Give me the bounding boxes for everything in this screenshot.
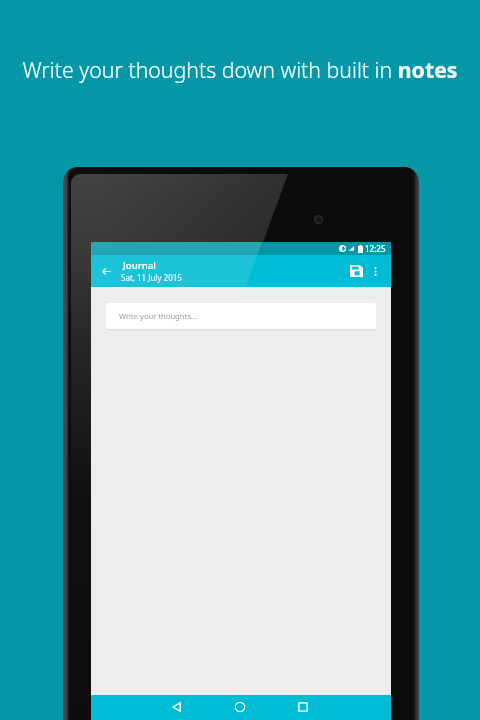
- staticText: Sat, 11 July 2015: [121, 272, 182, 283]
- button[interactable]: Recent apps: [292, 696, 314, 718]
- button[interactable]: Home: [229, 696, 251, 718]
- button[interactable]: Save: [347, 262, 365, 280]
- staticText: Journal: [123, 259, 156, 272]
- button[interactable]: Write your thoughts...: [106, 303, 376, 329]
- staticText: Write your thoughts...: [119, 311, 197, 321]
- button[interactable]: Back: [166, 696, 188, 718]
- staticText: Write your thoughts down with built in n…: [22, 55, 458, 84]
- button[interactable]: More options: [367, 263, 383, 279]
- button[interactable]: Back: [98, 263, 114, 279]
- staticText: 12:25: [365, 243, 386, 254]
